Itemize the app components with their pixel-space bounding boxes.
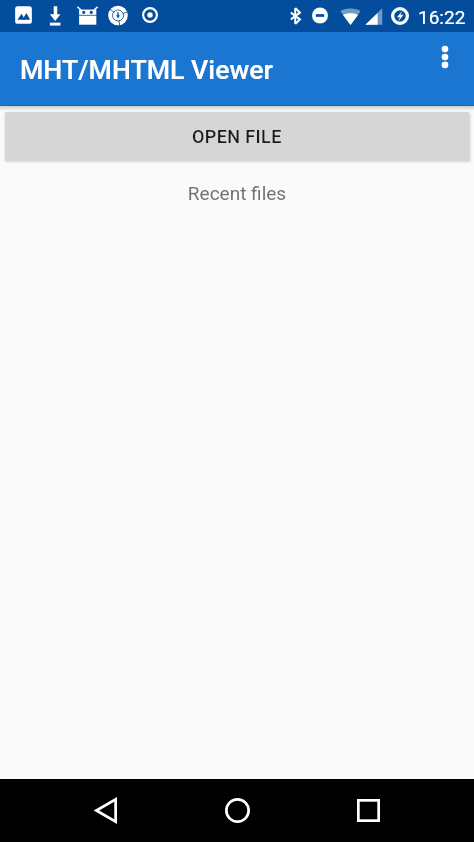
staticText: Recent files xyxy=(0,182,474,204)
button[interactable]: Back xyxy=(82,786,130,834)
staticText: OPEN FILE xyxy=(192,126,282,147)
button[interactable]: Recents xyxy=(344,786,392,834)
button[interactable]: Home xyxy=(213,786,261,834)
staticText: 16:22 xyxy=(418,6,466,28)
button[interactable]: More options xyxy=(421,33,468,80)
button[interactable]: OPEN FILE xyxy=(5,112,469,161)
staticText: MHT/MHTML Viewer xyxy=(20,54,273,85)
